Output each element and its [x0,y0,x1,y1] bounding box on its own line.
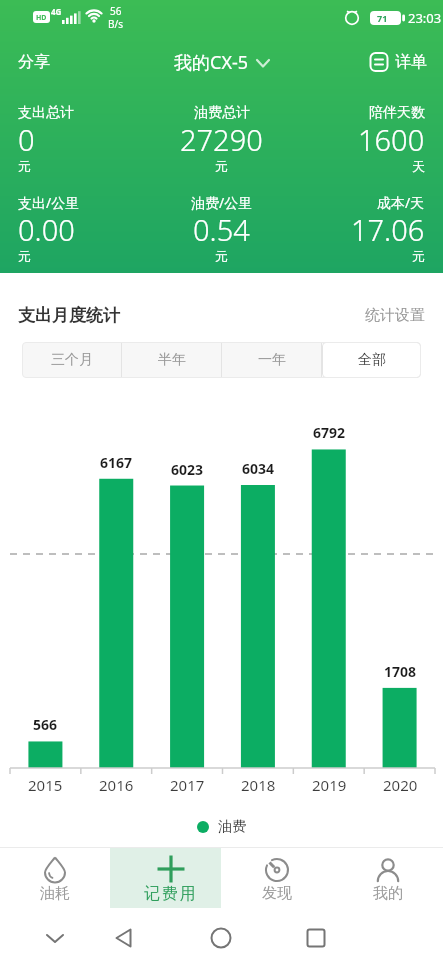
staticText: 1600 [358,120,425,159]
staticText: 油费 [218,818,246,836]
staticText: 油费/公里 [191,193,253,212]
button[interactable]: 全部 [322,342,421,378]
staticText: 详单 [395,52,427,72]
staticText: 27290 [180,120,263,159]
button[interactable] [221,908,332,960]
button[interactable]: 记费用 [110,848,221,908]
staticText: B/s [108,17,124,31]
staticText: 元 [18,158,31,174]
staticText: 支出/公里 [18,193,80,212]
button[interactable]: 统计设置 [365,306,425,325]
staticText: 71 [377,12,388,24]
staticText: 2018 [241,775,276,795]
staticText: 元 [412,248,425,264]
staticText: 成本/天 [377,193,425,212]
staticText: 6792 [313,423,346,442]
staticText: 23:03 [408,9,442,27]
staticText: 支出月度统计 [18,305,120,326]
button[interactable]: 分享 [10,44,58,80]
staticText: 56 [110,4,122,18]
staticText: 全部 [358,351,386,369]
staticText: 2015 [28,775,63,795]
staticText: 支出总计 [18,104,74,122]
staticText: 记费用 [144,884,198,904]
staticText: 元 [18,248,31,264]
staticText: 油费总计 [194,104,250,122]
button[interactable]: 三个月 [22,342,121,378]
staticText: 566 [33,715,58,734]
staticText: 6034 [242,459,275,478]
staticText: 4G [51,6,62,17]
staticText: 17.06 [351,210,425,249]
staticText: 半年 [158,351,186,369]
button[interactable]: 详单 [361,44,435,80]
button[interactable]: 我的 [332,848,443,908]
staticText: 三个月 [51,351,93,369]
button[interactable] [0,908,110,960]
staticText: 6167 [100,453,133,472]
staticText: 2020 [383,775,418,795]
staticText: 我的CX-5 [174,50,249,75]
staticText: 0 [18,120,35,159]
staticText: 元 [215,248,228,264]
button[interactable]: 半年 [122,342,221,378]
staticText: 分享 [18,52,50,72]
staticText: 1708 [384,662,417,681]
button[interactable]: 油耗 [0,848,110,908]
staticText: 2016 [99,775,134,795]
staticText: 2017 [170,775,205,795]
button[interactable] [110,908,221,960]
button[interactable]: 发现 [221,848,332,908]
staticText: 6023 [171,460,204,479]
staticText: 我的 [373,884,403,903]
staticText: 一年 [258,351,286,369]
staticText: 陪伴天数 [369,104,425,122]
staticText: HD [36,13,47,23]
staticText: 2019 [312,775,347,795]
staticText: 油耗 [40,884,70,903]
staticText: 0.00 [18,210,75,249]
staticText: 0.54 [193,210,250,249]
staticText: 天 [412,158,425,174]
button[interactable]: 一年 [222,342,321,378]
staticText: 统计设置 [365,306,425,325]
staticText: 发现 [262,884,292,903]
button[interactable]: 我的CX-5 [174,50,270,75]
staticText: 元 [215,158,228,174]
